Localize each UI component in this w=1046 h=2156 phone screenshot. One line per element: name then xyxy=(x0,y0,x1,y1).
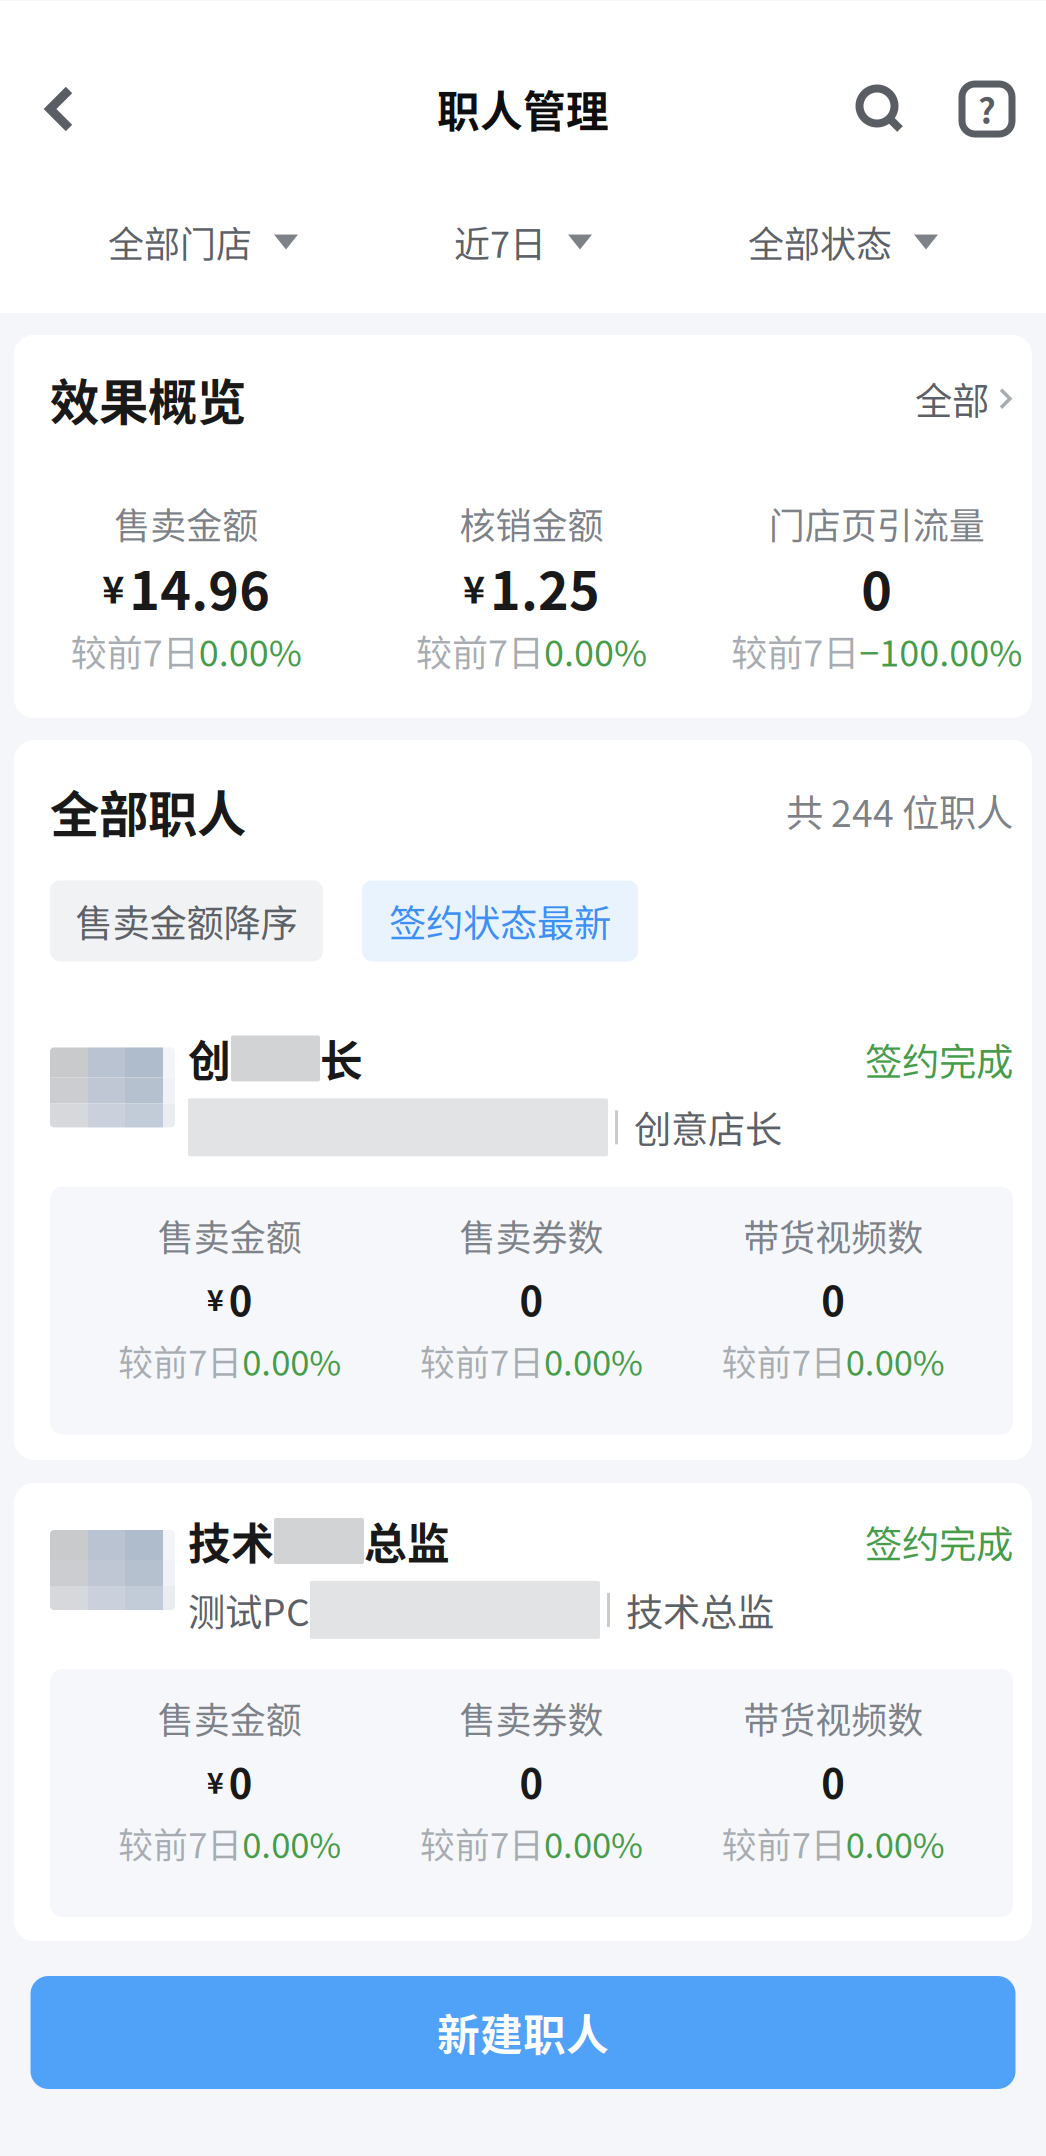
staticText: ¥ xyxy=(463,560,485,614)
staticText: 创 xyxy=(188,1027,231,1089)
button[interactable]: 全部状态 xyxy=(683,211,1003,273)
staticText: 共 244 位职人 xyxy=(786,784,1013,838)
button[interactable]: 帮助 xyxy=(950,68,1024,150)
staticText: 较前7日 xyxy=(420,1335,544,1386)
staticText: 签约状态最新 xyxy=(389,894,611,948)
staticText: 1.25 xyxy=(490,550,600,625)
staticText: ¥ xyxy=(102,560,124,614)
button[interactable]: 搜索 xyxy=(838,69,922,149)
button[interactable]: 全部门店 xyxy=(43,211,363,273)
staticText: 新建职人 xyxy=(437,2002,609,2063)
staticText: 带货视频数 xyxy=(743,1692,923,1744)
staticText: 门店页引流量 xyxy=(769,497,985,549)
staticText: 较前7日 xyxy=(722,1335,846,1386)
staticText: 0.00% xyxy=(544,1818,643,1868)
staticText: 0.00% xyxy=(544,625,647,677)
staticText: 0.00% xyxy=(846,1818,945,1868)
staticText: 较前7日 xyxy=(416,625,544,677)
staticText: 职人管理 xyxy=(437,78,609,140)
staticText: 售卖金额 xyxy=(158,1692,302,1744)
staticText: 0.00% xyxy=(846,1335,945,1386)
staticText: 测试PC xyxy=(188,1583,310,1637)
staticText: 技术总监 xyxy=(626,1583,774,1637)
staticText: 较前7日 xyxy=(731,625,859,677)
staticText: 签约完成 xyxy=(865,1515,1013,1569)
button[interactable]: 近7日 xyxy=(363,211,683,273)
staticText: 全部职人 xyxy=(50,775,246,846)
staticText: 0.00% xyxy=(242,1818,341,1868)
staticText: 近7日 xyxy=(454,216,546,268)
staticText: 售卖金额降序 xyxy=(75,894,297,948)
staticText: ? xyxy=(978,84,996,134)
staticText: 售卖金额 xyxy=(158,1209,302,1261)
button[interactable]: 返回 xyxy=(0,70,119,148)
button[interactable]: 全部 xyxy=(915,372,1013,426)
staticText: 售卖券数 xyxy=(459,1209,603,1261)
staticText: 长 xyxy=(320,1027,363,1089)
staticText: 0 xyxy=(861,550,892,625)
staticText: 签约完成 xyxy=(865,1032,1013,1086)
staticText: 售卖金额 xyxy=(114,497,258,549)
staticText: 较前7日 xyxy=(118,1818,242,1868)
staticText: 全部状态 xyxy=(748,216,892,268)
staticText: 全部门店 xyxy=(108,216,252,268)
staticText: 0 xyxy=(229,1270,253,1327)
staticText: 核销金额 xyxy=(459,497,603,549)
staticText: 0.00% xyxy=(242,1335,341,1386)
button[interactable]: 创 xyxy=(50,1033,1013,1434)
button[interactable]: 售卖金额降序 xyxy=(50,880,323,961)
staticText: 较前7日 xyxy=(722,1818,846,1868)
button[interactable]: 新建职人 xyxy=(30,1976,1015,2089)
staticText: 0.00% xyxy=(544,1335,643,1386)
staticText: 较前7日 xyxy=(118,1335,242,1386)
staticText: 14.96 xyxy=(129,550,270,625)
staticText: 0 xyxy=(229,1752,253,1810)
staticText: ¥ xyxy=(207,1278,224,1319)
button[interactable]: 技术 xyxy=(14,1483,1032,1941)
button[interactable]: 签约状态最新 xyxy=(362,880,638,961)
staticText: 效果概览 xyxy=(50,363,246,434)
staticText: 带货视频数 xyxy=(743,1209,923,1261)
staticText: 较前7日 xyxy=(71,625,199,677)
staticText: ¥ xyxy=(207,1760,224,1802)
staticText: 售卖券数 xyxy=(459,1692,603,1744)
staticText: 较前7日 xyxy=(420,1818,544,1868)
staticText: 技术 xyxy=(188,1510,274,1572)
staticText: 全部 xyxy=(915,372,989,426)
staticText: 0 xyxy=(519,1270,543,1327)
staticText: −100.00% xyxy=(859,625,1022,677)
staticText: 总监 xyxy=(364,1510,450,1572)
staticText: 0 xyxy=(519,1752,543,1810)
staticText: 0.00% xyxy=(199,625,302,677)
staticText: 0 xyxy=(821,1270,845,1327)
staticText: 0 xyxy=(821,1752,845,1810)
staticText: 创意店长 xyxy=(634,1100,782,1154)
